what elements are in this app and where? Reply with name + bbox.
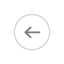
button[interactable]: Back: [11, 9, 53, 55]
